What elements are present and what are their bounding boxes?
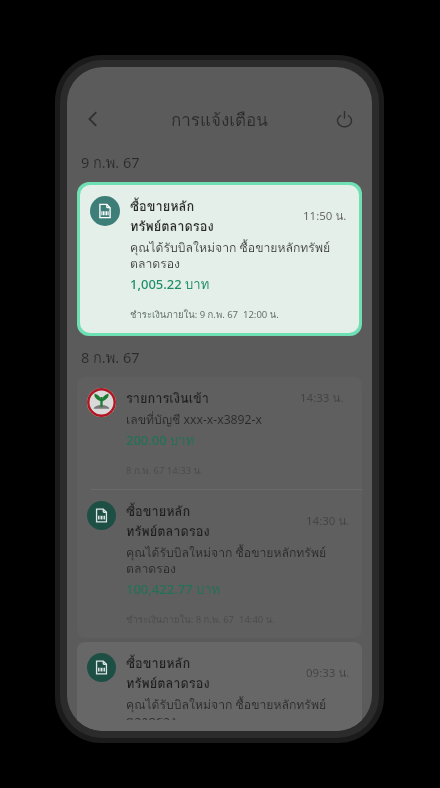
- button[interactable]: Back: [73, 99, 113, 139]
- staticText: การแจ้งเตือน: [171, 106, 268, 133]
- staticText: เลขที่บัญชี xxx-x-x3892-x: [126, 410, 262, 429]
- staticText: ซื้อขายหลักทรัพย์ตลาดรอง: [126, 653, 216, 693]
- staticText: 14:30 น.: [306, 512, 350, 530]
- staticText: 9 ก.พ. 67: [81, 151, 140, 174]
- staticText: คุณได้รับบิลใหม่จาก ซื้อขายหลักทรัพย์ตลา…: [126, 543, 350, 578]
- staticText: 100,422.77 บาท: [126, 579, 221, 600]
- staticText: 8 ก.พ. 67 14:33 น.: [126, 463, 203, 478]
- staticText: 8 ก.พ. 67: [81, 346, 140, 369]
- staticText: 09:33 น.: [306, 664, 350, 682]
- staticText: 11:50 น.: [303, 207, 347, 225]
- staticText: 14:33 น.: [300, 389, 344, 407]
- staticText: รายการเงินเข้า: [126, 388, 210, 408]
- button[interactable]: ซื้อขายหลักทรัพย์ตลาดรอง: [77, 490, 362, 638]
- staticText: ซื้อขายหลักทรัพย์ตลาดรอง: [130, 196, 216, 236]
- button[interactable]: ซื้อขายหลักทรัพย์ตลาดรอง: [77, 642, 362, 731]
- staticText: คุณได้รับบิลใหม่จาก ซื้อขายหลักทรัพย์ตลา…: [126, 695, 350, 720]
- staticText: 1,005.22 บาท: [130, 274, 210, 295]
- button[interactable]: ซื้อขายหลักทรัพย์ตลาดรอง: [80, 185, 359, 333]
- staticText: ซื้อขายหลักทรัพย์ตลาดรอง: [126, 501, 216, 541]
- staticText: 200.00 บาท: [126, 430, 195, 451]
- staticText: ชำระเงินภายใน: 8 ก.พ. 67 14:40 น.: [126, 612, 275, 627]
- staticText: ชำระเงินภายใน: 9 ก.พ. 67 12:00 น.: [130, 307, 279, 322]
- button[interactable]: Power: [324, 99, 364, 139]
- staticText: คุณได้รับบิลใหม่จาก ซื้อขายหลักทรัพย์ตลา…: [130, 238, 347, 273]
- button[interactable]: รายการเงินเข้า: [77, 377, 362, 489]
